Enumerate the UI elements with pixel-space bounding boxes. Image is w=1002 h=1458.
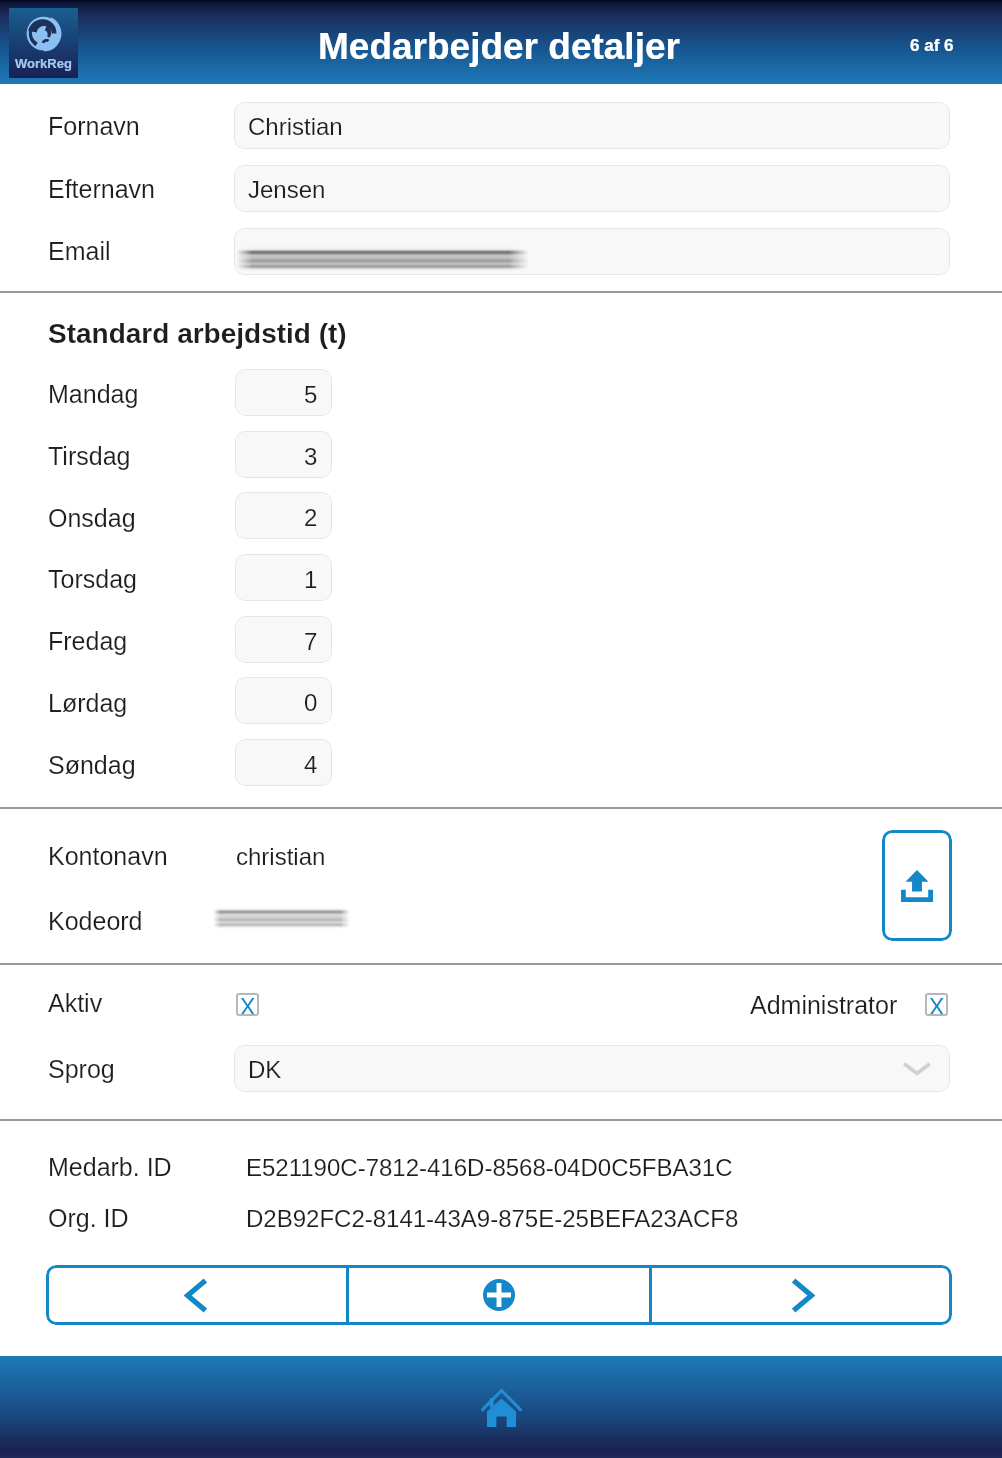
staticText: 0: [304, 689, 318, 716]
staticText: Mandag: [48, 380, 139, 408]
button[interactable]: Next employee: [652, 1265, 952, 1325]
button[interactable]: [234, 102, 950, 149]
staticText: Kontonavn: [48, 842, 168, 870]
staticText: Christian: [248, 113, 343, 140]
staticText: X: [240, 994, 256, 1017]
button[interactable]: Add employee: [349, 1265, 649, 1325]
button[interactable]: 0: [235, 677, 332, 724]
staticText: Torsdag: [48, 565, 137, 593]
staticText: Tirsdag: [48, 442, 131, 470]
staticText: Sprog: [48, 1055, 115, 1083]
staticText: Medarb. ID: [48, 1153, 172, 1181]
staticText: E521190C-7812-416D-8568-04D0C5FBA31C: [246, 1154, 733, 1181]
staticText: Aktiv: [48, 989, 103, 1017]
button[interactable]: Previous employee: [46, 1265, 346, 1325]
button[interactable]: Upload: [882, 830, 952, 941]
staticText: Fredag: [48, 627, 128, 655]
button[interactable]: 2: [235, 492, 332, 539]
staticText: 6 af 6: [910, 36, 954, 55]
staticText: 3: [304, 443, 318, 470]
staticText: DK: [248, 1056, 282, 1083]
button[interactable]: 5: [235, 369, 332, 416]
staticText: 4: [304, 751, 318, 778]
staticText: Medarbejder detaljer: [318, 26, 680, 67]
button[interactable]: Home: [458, 1364, 544, 1450]
staticText: Lørdag: [48, 689, 128, 717]
button[interactable]: Toggle: [236, 993, 259, 1016]
button[interactable]: 1: [235, 554, 332, 601]
staticText: christian: [236, 843, 326, 870]
button[interactable]: 3: [235, 431, 332, 478]
staticText: Onsdag: [48, 504, 136, 532]
staticText: D2B92FC2-8141-43A9-875E-25BEFA23ACF8: [246, 1205, 739, 1232]
staticText: 2: [304, 504, 318, 531]
button[interactable]: [234, 165, 950, 212]
button[interactable]: Toggle: [925, 993, 948, 1016]
button[interactable]: 7: [235, 616, 332, 663]
staticText: Kodeord: [48, 907, 143, 935]
staticText: X: [929, 994, 945, 1017]
staticText: Email: [48, 237, 111, 265]
staticText: WorkReg: [15, 56, 72, 71]
staticText: Jensen: [248, 176, 326, 203]
button[interactable]: Open language list: [901, 1053, 933, 1083]
staticText: Org. ID: [48, 1204, 129, 1232]
staticText: Søndag: [48, 751, 136, 779]
staticText: Standard arbejdstid (t): [48, 318, 347, 349]
staticText: Fornavn: [48, 112, 140, 140]
button[interactable]: 4: [235, 739, 332, 786]
staticText: 7: [304, 628, 318, 655]
staticText: 1: [304, 566, 318, 593]
staticText: Efternavn: [48, 175, 156, 203]
button[interactable]: [234, 1045, 950, 1092]
button[interactable]: WorkReg: [9, 8, 78, 78]
button[interactable]: [234, 228, 950, 275]
staticText: Administrator: [750, 991, 898, 1019]
button[interactable]: Administrator: [744, 988, 892, 1020]
staticText: 5: [304, 381, 318, 408]
